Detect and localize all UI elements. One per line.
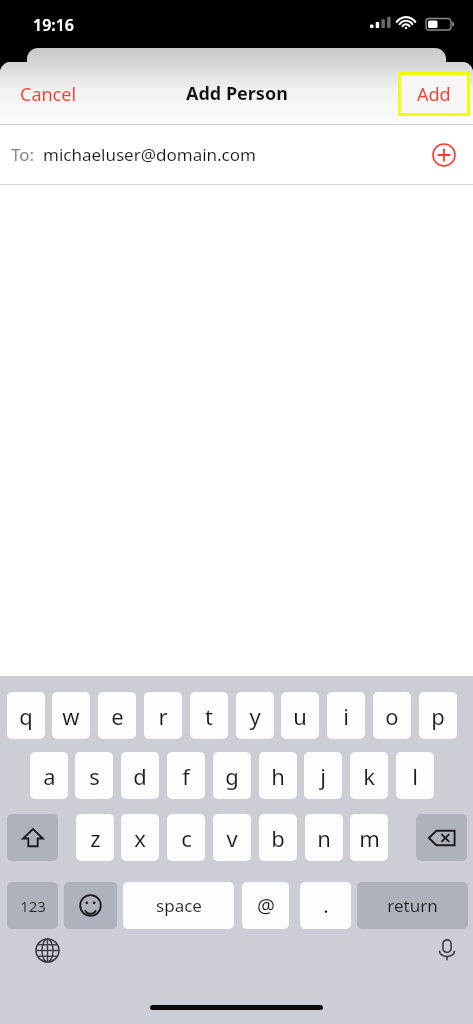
staticText: michaeluser@domain.com bbox=[43, 143, 256, 166]
button[interactable]: g bbox=[213, 752, 251, 799]
staticText: @ bbox=[257, 892, 275, 919]
staticText: b bbox=[271, 823, 285, 853]
button[interactable]: v bbox=[213, 814, 251, 861]
staticText: r bbox=[158, 701, 168, 731]
button[interactable]: Shift bbox=[7, 814, 58, 861]
button[interactable]: Cancel bbox=[10, 78, 87, 110]
button[interactable]: b bbox=[259, 814, 297, 861]
staticText: d bbox=[133, 761, 147, 791]
staticText: p bbox=[431, 701, 445, 731]
button[interactable]: Add bbox=[401, 75, 467, 113]
button[interactable]: i bbox=[327, 692, 365, 739]
staticText: y bbox=[249, 701, 261, 731]
staticText: space bbox=[156, 894, 202, 917]
staticText: t bbox=[205, 701, 213, 731]
staticText: u bbox=[293, 701, 307, 731]
staticText: e bbox=[111, 701, 124, 731]
button[interactable]: d bbox=[121, 752, 159, 799]
staticText: a bbox=[43, 761, 56, 791]
staticText: k bbox=[363, 761, 375, 791]
button[interactable]: z bbox=[76, 814, 114, 861]
staticText: f bbox=[182, 761, 190, 791]
button[interactable]: return bbox=[357, 882, 468, 929]
staticText: Add Person bbox=[186, 81, 288, 106]
staticText: l bbox=[412, 761, 418, 791]
staticText: Add bbox=[417, 82, 451, 107]
button[interactable]: t bbox=[190, 692, 228, 739]
button[interactable]: e bbox=[98, 692, 136, 739]
button[interactable]: space bbox=[123, 882, 234, 929]
button[interactable]: 123 bbox=[7, 882, 58, 929]
staticText: g bbox=[225, 761, 239, 791]
button[interactable]: n bbox=[305, 814, 343, 861]
button[interactable]: Switch keyboard bbox=[30, 933, 64, 967]
button[interactable]: Emoji bbox=[64, 882, 117, 929]
button[interactable]: f bbox=[167, 752, 205, 799]
button[interactable]: q bbox=[7, 692, 45, 739]
button[interactable]: j bbox=[304, 752, 342, 799]
staticText: c bbox=[181, 823, 192, 853]
staticText: h bbox=[271, 761, 285, 791]
staticText: n bbox=[317, 823, 331, 853]
staticText: Cancel bbox=[20, 82, 77, 107]
button[interactable]: @ bbox=[242, 882, 289, 929]
staticText: s bbox=[89, 761, 100, 791]
button[interactable]: l bbox=[396, 752, 434, 799]
button[interactable]: x bbox=[121, 814, 159, 861]
staticText: m bbox=[359, 823, 380, 853]
button[interactable]: Add contact bbox=[432, 143, 456, 167]
button[interactable]: a bbox=[30, 752, 68, 799]
button[interactable]: w bbox=[52, 692, 90, 739]
button[interactable]: h bbox=[259, 752, 297, 799]
button[interactable]: r bbox=[144, 692, 182, 739]
button[interactable]: p bbox=[419, 692, 457, 739]
button[interactable]: c bbox=[167, 814, 205, 861]
button[interactable]: y bbox=[236, 692, 274, 739]
staticText: 123 bbox=[20, 896, 46, 916]
staticText: j bbox=[320, 761, 326, 791]
staticText: q bbox=[19, 701, 33, 731]
button[interactable]: . bbox=[300, 882, 351, 929]
button[interactable]: u bbox=[281, 692, 319, 739]
button[interactable]: k bbox=[350, 752, 388, 799]
button[interactable]: s bbox=[75, 752, 113, 799]
staticText: . bbox=[323, 892, 329, 919]
button[interactable]: m bbox=[350, 814, 388, 861]
button[interactable]: To: bbox=[0, 125, 473, 184]
staticText: v bbox=[226, 823, 238, 853]
button[interactable]: Dictate bbox=[430, 933, 464, 967]
staticText: z bbox=[90, 823, 101, 853]
button[interactable]: o bbox=[373, 692, 411, 739]
staticText: 19:16 bbox=[33, 14, 75, 36]
button[interactable]: Backspace bbox=[416, 814, 467, 861]
staticText: w bbox=[62, 701, 80, 731]
staticText: To: bbox=[11, 143, 35, 166]
staticText: o bbox=[385, 701, 399, 731]
staticText: return bbox=[387, 894, 438, 917]
staticText: x bbox=[134, 823, 146, 853]
staticText: i bbox=[343, 701, 349, 731]
